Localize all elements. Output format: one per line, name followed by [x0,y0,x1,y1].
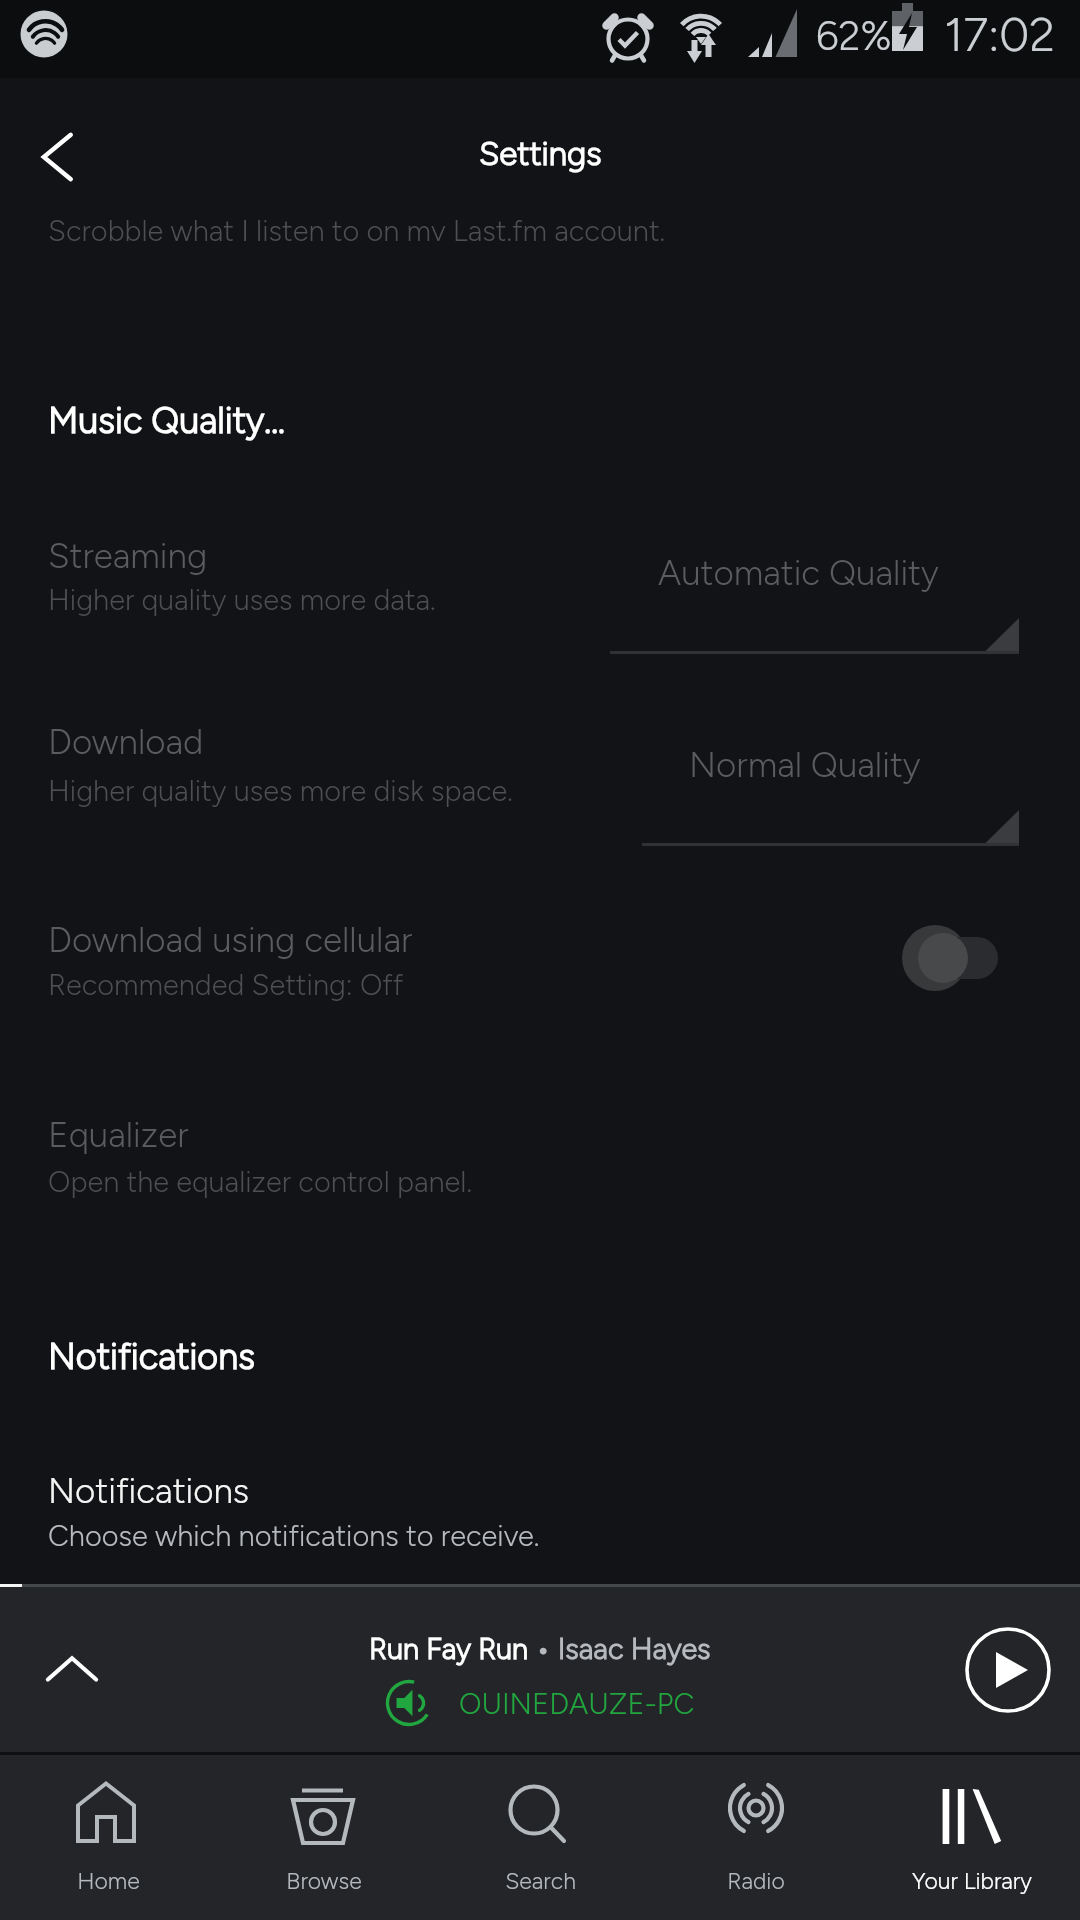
button[interactable] [0,500,1080,680]
button[interactable] [0,1440,1080,1570]
staticText: Notifications [48,1335,255,1378]
staticText: Open the equalizer control panel. [48,1164,473,1199]
staticText: Scrobble what I listen to on my Last.fm … [48,219,666,241]
button[interactable] [0,890,1080,1040]
button[interactable] [0,1085,1080,1225]
staticText: Higher quality uses more data. [48,582,436,617]
button[interactable]: Your Library [864,1755,1080,1920]
button[interactable]: Expand player [26,1624,118,1716]
staticText: Higher quality uses more disk space. [48,773,513,808]
staticText: Equalizer [48,1114,189,1156]
staticText: 17:02 [944,6,1056,62]
staticText: Download [48,721,204,763]
button[interactable]: Play [960,1622,1056,1718]
staticText: Music Quality... [48,399,285,442]
button[interactable]: Browse [216,1755,432,1920]
staticText: Recommended Setting: Off [48,967,404,1002]
staticText: Notifications [48,1470,250,1512]
staticText: Download using cellular [48,919,413,961]
staticText: Streaming [48,535,208,577]
staticText: Choose which notifications to receive. [48,1518,540,1553]
staticText: Radio [727,1867,785,1895]
button[interactable]: Home [0,1755,216,1920]
staticText: Automatic Quality [658,552,939,594]
button[interactable]: Radio [648,1755,864,1920]
staticText: Browse [286,1867,362,1895]
staticText: 62% [816,12,892,60]
staticText: Normal Quality [689,744,921,786]
button[interactable]: Back [2,102,112,212]
button[interactable] [0,692,1080,872]
staticText: • Isaac Hayes [536,1631,711,1666]
staticText: OUINEDAUZE-PC [459,1686,695,1721]
staticText: Search [505,1867,576,1895]
staticText: Run Fay Run [369,1631,536,1666]
button[interactable]: Search [432,1755,648,1920]
staticText: Settings [479,134,602,174]
staticText: Your Library [912,1867,1032,1895]
button[interactable]: Expand player [0,1587,1080,1752]
staticText: Home [77,1867,140,1895]
